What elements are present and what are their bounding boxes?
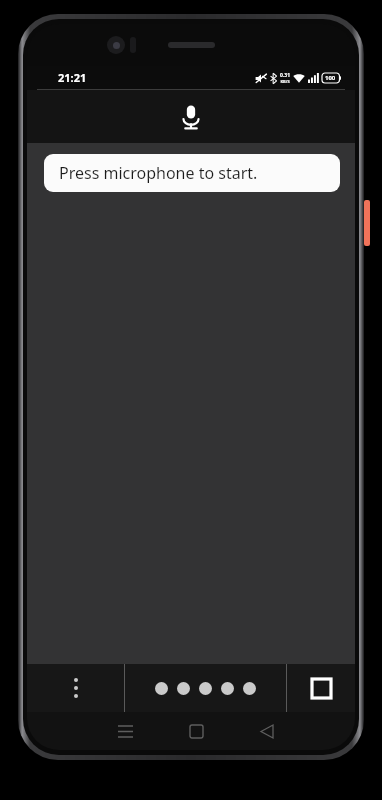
button[interactable]: Press microphone to start.	[44, 154, 340, 192]
button[interactable]: Recents	[103, 712, 147, 750]
button[interactable]: Levels	[125, 664, 286, 712]
staticText: Press microphone to start.	[59, 162, 258, 184]
button[interactable]: Stop	[287, 664, 355, 712]
staticText: 100	[325, 74, 336, 82]
button[interactable]: Back	[245, 712, 289, 750]
button[interactable]: Home	[174, 712, 218, 750]
button[interactable]: More options	[27, 664, 124, 712]
staticText: 21:21	[58, 70, 87, 85]
staticText: 0.31	[280, 72, 290, 79]
staticText: KB/S	[280, 79, 290, 84]
button[interactable]: Microphone	[169, 95, 213, 139]
